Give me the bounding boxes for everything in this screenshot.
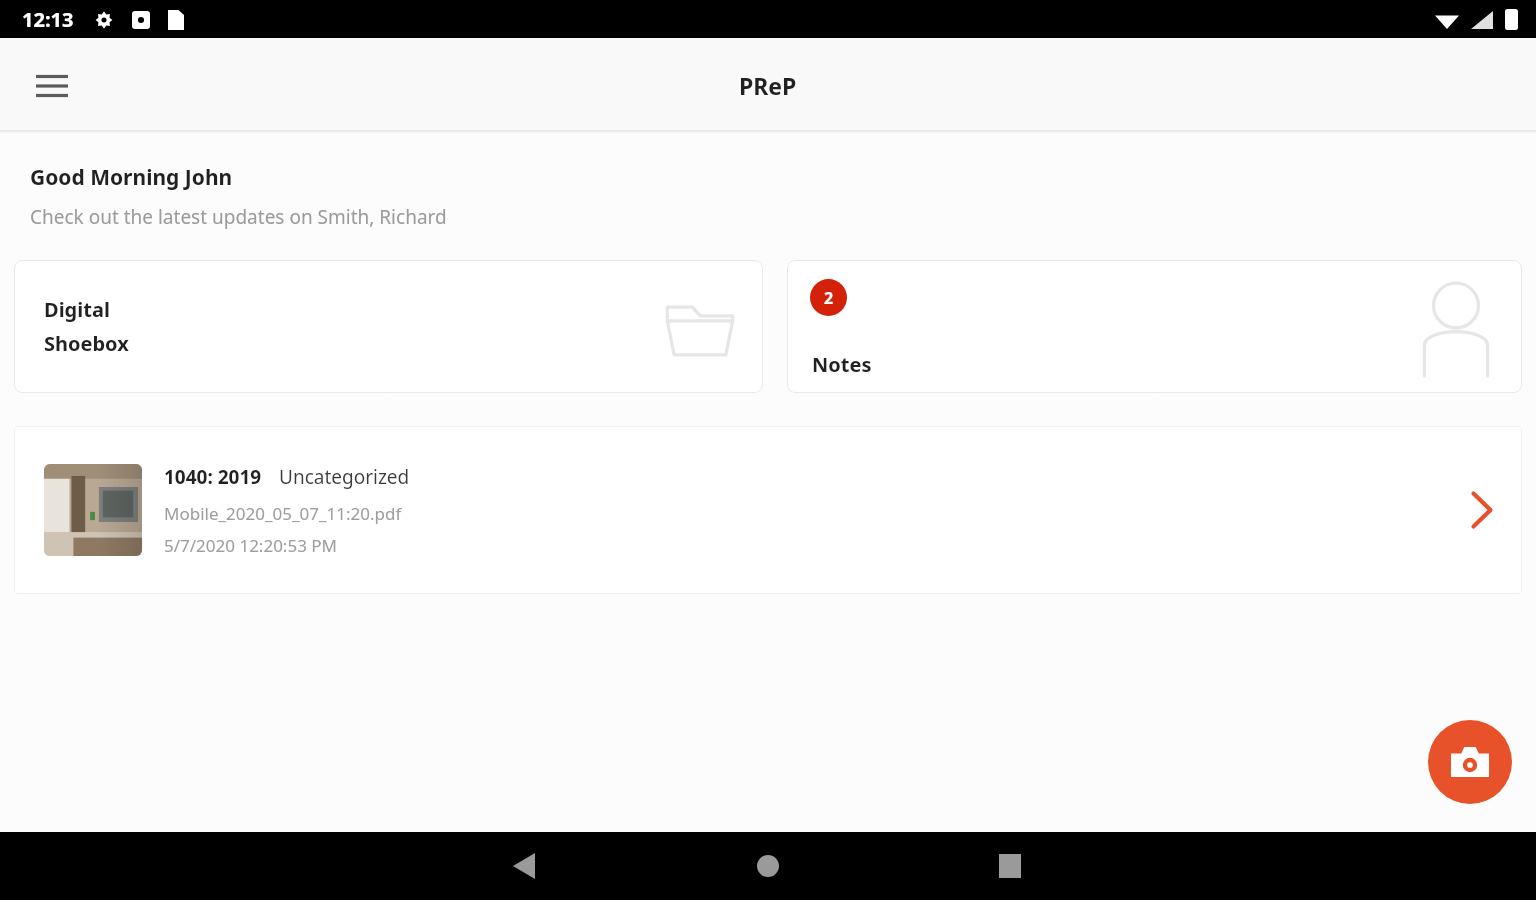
button[interactable]: Open document details [1442,426,1522,594]
staticText: Digital [44,296,110,323]
staticText: 5/7/2020 12:20:53 PM [164,534,337,557]
button[interactable]: Open navigation menu [24,58,80,114]
staticText: Mobile_2020_05_07_11:20.pdf [164,502,402,525]
button[interactable]: 1040: 2019 [14,426,1522,594]
staticText: 2 [824,287,834,309]
button[interactable]: Recent apps [970,832,1050,900]
staticText: 12:13 [22,6,74,33]
staticText: Notes [812,351,872,378]
button[interactable]: Digital [14,260,763,393]
staticText: Check out the latest updates on Smith, R… [30,204,447,230]
staticText: 1040: 2019 [164,464,262,490]
staticText: Shoebox [44,330,129,357]
button[interactable]: Home [728,832,808,900]
staticText: Uncategorized [279,464,410,490]
staticText: Good Morning John [30,163,233,192]
button[interactable]: Capture photo [1428,720,1512,804]
button[interactable]: Back [484,832,564,900]
button[interactable]: 2 [787,260,1522,393]
staticText: PReP [739,70,797,101]
